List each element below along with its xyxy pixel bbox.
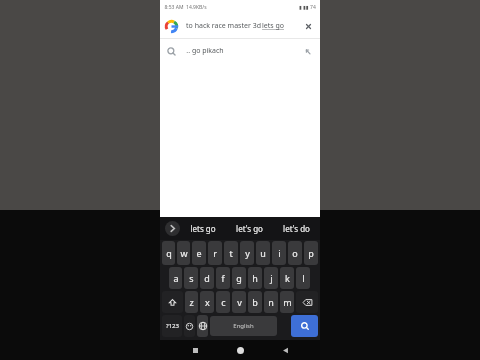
button[interactable]: p: [304, 241, 318, 265]
button[interactable]: x: [200, 291, 214, 313]
button[interactable]: English: [210, 316, 277, 336]
button[interactable]: s: [184, 267, 198, 289]
staticText: e: [196, 247, 202, 259]
staticText: r: [213, 247, 217, 259]
staticText: q: [166, 247, 172, 259]
button[interactable]: u: [256, 241, 270, 265]
staticText: i: [278, 247, 281, 259]
staticText: w: [180, 247, 188, 259]
button[interactable]: t: [224, 241, 238, 265]
staticText: j: [270, 272, 273, 284]
staticText: let's go: [236, 223, 263, 234]
button[interactable]: c: [216, 291, 230, 313]
staticText: ?123: [166, 322, 179, 330]
staticText: x: [205, 296, 210, 308]
staticText: y: [245, 247, 250, 259]
button[interactable]: j: [264, 267, 278, 289]
staticText: ▮ ▮▮ 74: [299, 4, 316, 11]
button[interactable]: Insert suggestion: [301, 45, 314, 58]
button[interactable]: q: [162, 241, 175, 265]
button[interactable]: let's do: [273, 217, 320, 240]
button[interactable]: d: [200, 267, 214, 289]
button[interactable]: .. go pikach: [160, 39, 320, 63]
button[interactable]: l: [296, 267, 310, 289]
button[interactable]: lets go: [180, 217, 226, 240]
staticText: lets go: [190, 223, 216, 234]
staticText: m: [283, 296, 292, 308]
staticText: .. go pikach: [186, 46, 224, 56]
button[interactable]: z: [185, 291, 198, 313]
button[interactable]: k: [280, 267, 294, 289]
button[interactable]: m: [280, 291, 294, 313]
button[interactable]: ?123: [162, 315, 182, 337]
button[interactable]: Emoji: [184, 315, 195, 337]
staticText: a: [173, 272, 179, 284]
button[interactable]: h: [248, 267, 262, 289]
button[interactable]: v: [232, 291, 246, 313]
staticText: s: [189, 272, 194, 284]
button[interactable]: i: [272, 241, 286, 265]
button[interactable]: e: [192, 241, 206, 265]
staticText: h: [252, 272, 258, 284]
staticText: n: [268, 296, 274, 308]
button[interactable]: n: [264, 291, 278, 313]
button[interactable]: More suggestions: [165, 221, 180, 236]
staticText: k: [285, 272, 290, 284]
button[interactable]: a: [169, 267, 182, 289]
button[interactable]: Clear: [301, 19, 315, 33]
staticText: z: [189, 296, 194, 308]
button[interactable]: Shift: [162, 291, 183, 313]
button[interactable]: g: [232, 267, 246, 289]
staticText: t: [229, 247, 233, 259]
staticText: b: [252, 296, 258, 308]
button[interactable]: o: [288, 241, 302, 265]
staticText: d: [204, 272, 210, 284]
button[interactable]: b: [248, 291, 262, 313]
button[interactable]: Change language: [197, 315, 208, 337]
staticText: g: [236, 272, 242, 284]
button[interactable]: Home: [230, 340, 250, 360]
button[interactable]: Back: [275, 340, 295, 360]
button[interactable]: Search: [291, 315, 318, 337]
staticText: u: [260, 247, 266, 259]
staticText: lets go: [262, 21, 284, 31]
staticText: v: [237, 296, 242, 308]
staticText: o: [292, 247, 298, 259]
button[interactable]: r: [208, 241, 222, 265]
button[interactable]: Backspace: [296, 291, 318, 313]
staticText: to hack race master 3d: [185, 21, 262, 31]
button[interactable]: to hack race master 3d: [160, 14, 320, 38]
staticText: English: [233, 322, 254, 330]
staticText: 8:53 AM 14.9KB/s: [164, 4, 207, 11]
staticText: c: [221, 296, 226, 308]
button[interactable]: let's go: [226, 217, 273, 240]
staticText: l: [302, 272, 305, 284]
button[interactable]: f: [216, 267, 230, 289]
staticText: p: [308, 247, 314, 259]
staticText: let's do: [283, 223, 310, 234]
button[interactable]: w: [177, 241, 190, 265]
button[interactable]: y: [240, 241, 254, 265]
staticText: f: [221, 272, 225, 284]
button[interactable]: Recents: [185, 340, 205, 360]
